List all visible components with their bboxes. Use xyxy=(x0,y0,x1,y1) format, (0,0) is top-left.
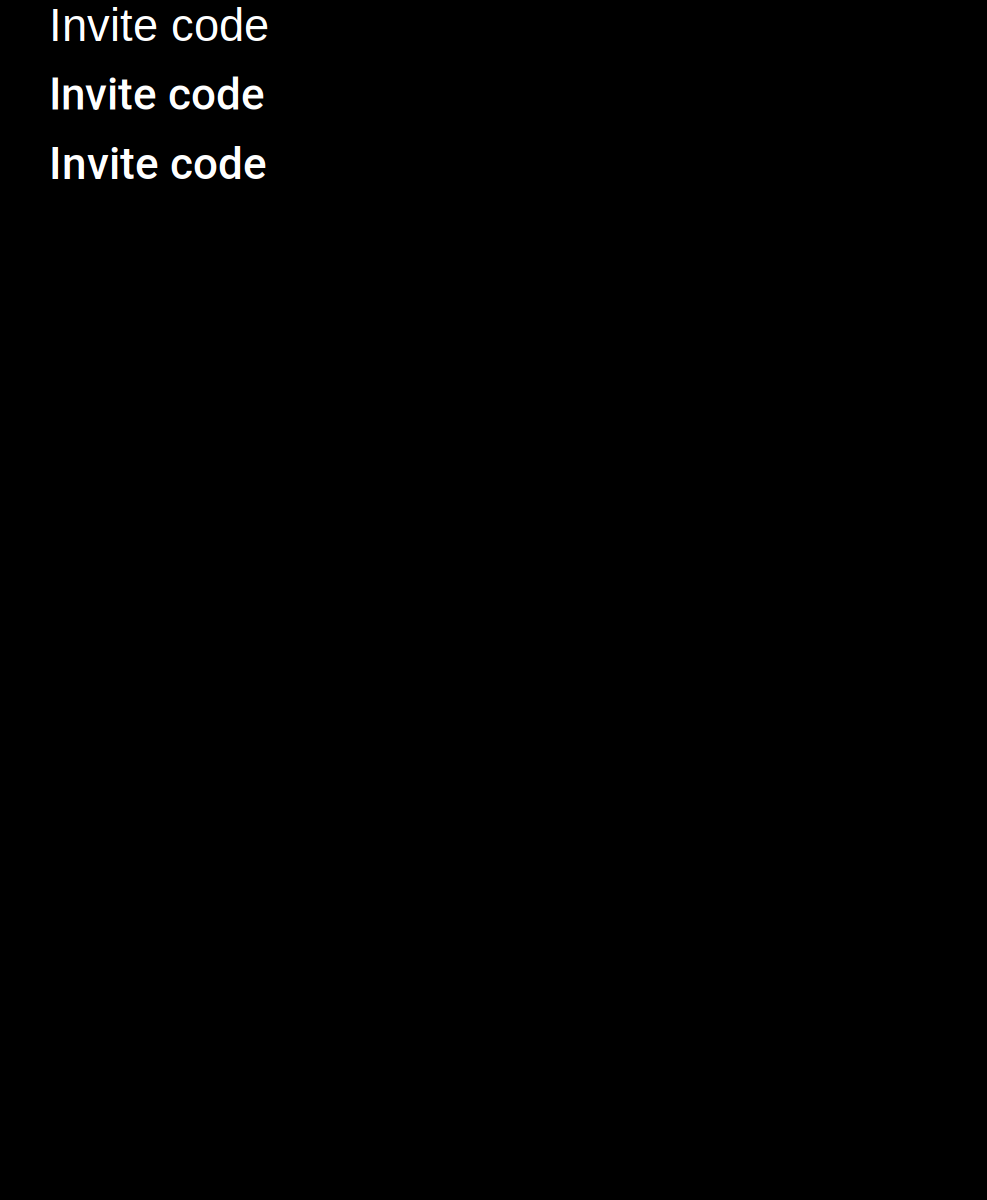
staticText: Invite code xyxy=(49,138,267,190)
staticText: Invite code xyxy=(49,0,269,51)
staticText: Invite code xyxy=(49,69,265,120)
